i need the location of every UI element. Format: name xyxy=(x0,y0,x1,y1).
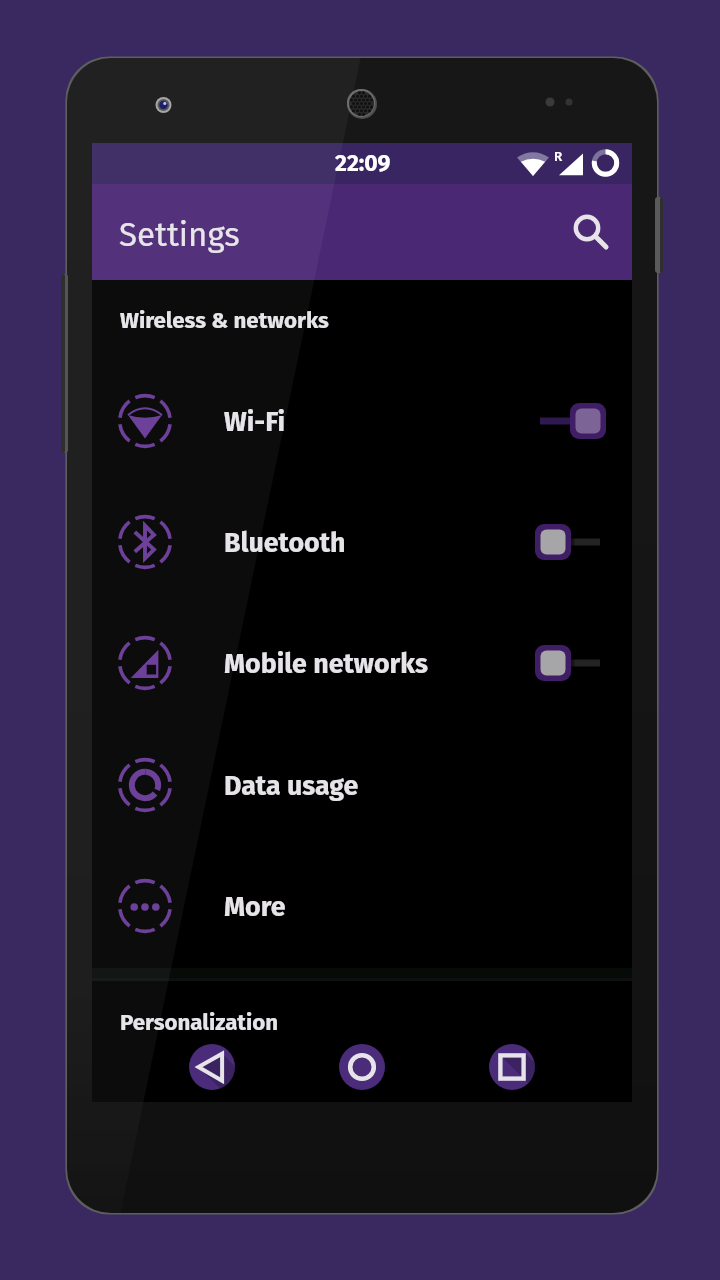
staticText: More xyxy=(224,891,286,923)
staticText: 22:09 xyxy=(335,149,391,177)
button[interactable]: Data usage xyxy=(92,725,632,845)
staticText: R xyxy=(554,148,563,164)
button[interactable]: Off xyxy=(532,522,608,562)
button[interactable]: Bluetooth xyxy=(92,482,632,602)
staticText: Settings xyxy=(119,215,240,255)
staticText: Data usage xyxy=(224,770,359,802)
button[interactable]: Wi-Fi xyxy=(92,361,632,481)
button[interactable]: Mobile networks xyxy=(92,603,632,723)
button[interactable]: Recents xyxy=(489,1044,535,1090)
staticText: Wireless & networks xyxy=(120,307,329,334)
staticText: Bluetooth xyxy=(224,527,346,559)
staticText: Mobile networks xyxy=(224,648,428,680)
button[interactable]: Home xyxy=(339,1044,385,1090)
button[interactable]: Back xyxy=(189,1044,235,1090)
button[interactable]: On xyxy=(532,401,608,441)
staticText: Personalization xyxy=(120,1009,279,1036)
button[interactable]: More xyxy=(92,846,632,966)
staticText: Wi-Fi xyxy=(224,406,285,438)
button[interactable]: Off xyxy=(532,643,608,683)
button[interactable]: Search xyxy=(554,196,626,268)
